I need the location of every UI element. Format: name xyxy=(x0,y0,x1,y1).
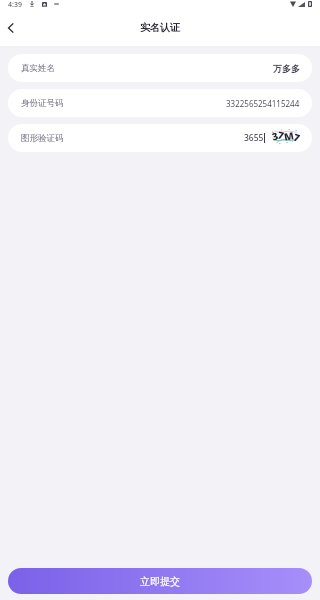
staticText: 3655 xyxy=(244,132,264,144)
staticText: 实名认证 xyxy=(140,21,180,34)
staticText: 3322565254115244 xyxy=(226,98,300,109)
staticText: M xyxy=(283,128,295,144)
staticText: 4:39 xyxy=(8,0,22,8)
staticText: 3 xyxy=(270,128,280,143)
staticText: 图形验证码 xyxy=(21,133,64,144)
staticText: 7 xyxy=(276,127,286,142)
staticText: 立即提交 xyxy=(140,575,180,588)
button[interactable]: 身份证号码 xyxy=(8,89,312,117)
staticText: 万多多 xyxy=(273,63,300,74)
button[interactable]: 立即提交 xyxy=(8,568,312,594)
button[interactable]: 真实姓名 xyxy=(8,54,312,82)
button[interactable]: Back xyxy=(0,14,28,42)
staticText: 7 xyxy=(292,130,300,144)
staticText: 真实姓名 xyxy=(21,63,55,74)
staticText: 身份证号码 xyxy=(21,98,64,109)
button[interactable]: 图形验证码 xyxy=(8,124,312,152)
